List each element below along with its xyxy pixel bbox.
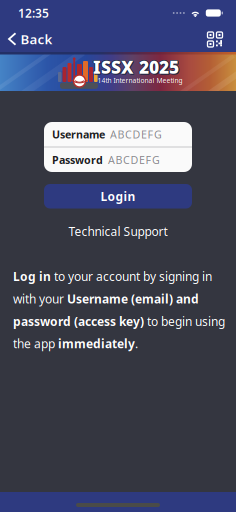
staticText: password (access key) [13, 313, 144, 329]
button[interactable]: Scan QR Code [207, 31, 236, 46]
staticText: ISSX 2025 [94, 55, 180, 78]
staticText: ABCDEFG [108, 153, 160, 167]
staticText: Login [100, 188, 135, 204]
staticText: 14th International Meeting [97, 76, 182, 85]
staticText: Back [20, 30, 52, 48]
button[interactable]: Login [44, 184, 192, 208]
staticText: 12:35 [18, 5, 49, 21]
button[interactable]: Username [44, 122, 192, 146]
staticText: ISSX 2025 [92, 55, 178, 78]
staticText: to your account by signing in [51, 268, 212, 284]
button[interactable]: Back [0, 30, 52, 48]
button[interactable]: Password [44, 147, 192, 172]
staticText: . [135, 336, 138, 352]
staticText: ISSX 2025 [93, 55, 179, 78]
staticText: ISSX 2025 [94, 56, 180, 79]
staticText: to begin using [144, 313, 225, 329]
button[interactable]: Technical Support [68, 218, 167, 244]
staticText: with your [13, 291, 67, 307]
staticText: ISSX 2025 [93, 55, 179, 78]
staticText: immediately [58, 336, 135, 352]
staticText: Username [52, 127, 105, 141]
staticText: Technical Support [68, 223, 167, 239]
staticText: the app [13, 336, 58, 352]
staticText: Username (email) and [67, 291, 199, 307]
staticText: ABCDEFG [110, 127, 162, 141]
staticText: Log in [13, 268, 51, 284]
staticText: Password [52, 153, 103, 167]
